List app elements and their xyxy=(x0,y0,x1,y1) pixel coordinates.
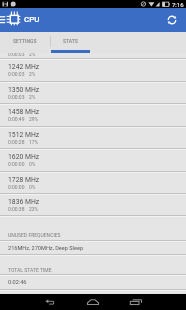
staticText: 0:00:00 xyxy=(8,161,25,167)
staticText: 1512 MHz xyxy=(8,131,40,139)
button[interactable]: Recent apps xyxy=(124,294,148,310)
button[interactable]: TOTAL STATE TIME xyxy=(0,255,186,274)
staticText: 17% xyxy=(29,139,39,145)
staticText: 0% xyxy=(29,184,36,190)
staticText: 0:00:49 xyxy=(8,116,25,122)
button[interactable]: 1512 MHz xyxy=(0,127,186,148)
staticText: 0:00:03 xyxy=(8,94,25,100)
staticText: 0:00:03 xyxy=(8,71,25,77)
button[interactable]: 1458 MHz xyxy=(0,104,186,125)
staticText: 0% xyxy=(29,161,36,167)
button[interactable]: 216MHz, 270MHz, Deep Sleep xyxy=(0,241,186,254)
button[interactable]: 1620 MHz xyxy=(0,149,186,170)
staticText: 0:00:28 xyxy=(8,139,25,145)
staticText: 2% xyxy=(29,51,36,57)
staticText: 1458 MHz xyxy=(8,108,40,116)
button[interactable]: 1728 MHz xyxy=(0,172,186,193)
button[interactable]: SETTINGS xyxy=(0,32,50,50)
staticText: 216MHz, 270MHz, Deep Sleep xyxy=(8,245,84,252)
staticText: SETTINGS xyxy=(13,38,37,44)
staticText: TOTAL STATE TIME xyxy=(8,267,52,273)
staticText: 2% xyxy=(29,71,36,77)
staticText: 1836 MHz xyxy=(8,198,40,206)
button[interactable]: Open navigation menu xyxy=(0,8,7,32)
staticText: 7:16 xyxy=(172,1,184,8)
staticText: CPU xyxy=(24,15,40,24)
staticText: 1350 MHz xyxy=(8,86,40,94)
button[interactable]: 1242 MHz xyxy=(0,59,186,80)
button[interactable]: Home xyxy=(81,294,105,310)
button[interactable]: Refresh xyxy=(162,8,182,32)
button[interactable]: 1836 MHz xyxy=(0,194,186,215)
staticText: 0:02:46 xyxy=(8,279,27,286)
staticText: 0:00:00 xyxy=(8,184,25,190)
staticText: UNUSED FREQUENCIES xyxy=(8,232,61,238)
staticText: STATS xyxy=(63,38,78,44)
button[interactable]: STATS xyxy=(51,32,90,50)
button[interactable]: Back xyxy=(38,294,62,310)
staticText: 1242 MHz xyxy=(8,63,40,71)
staticText: 1728 MHz xyxy=(8,176,40,184)
staticText: 29% xyxy=(29,116,39,122)
staticText: 0:00:03 xyxy=(8,51,25,57)
staticText: 1620 MHz xyxy=(8,153,40,161)
button[interactable]: UNUSED FREQUENCIES xyxy=(0,216,186,239)
staticText: 23% xyxy=(29,206,39,212)
button[interactable]: 1350 MHz xyxy=(0,82,186,103)
staticText: 0:00:38 xyxy=(8,206,25,212)
staticText: 2% xyxy=(29,94,36,100)
button[interactable]: 0:02:46 xyxy=(0,275,186,289)
